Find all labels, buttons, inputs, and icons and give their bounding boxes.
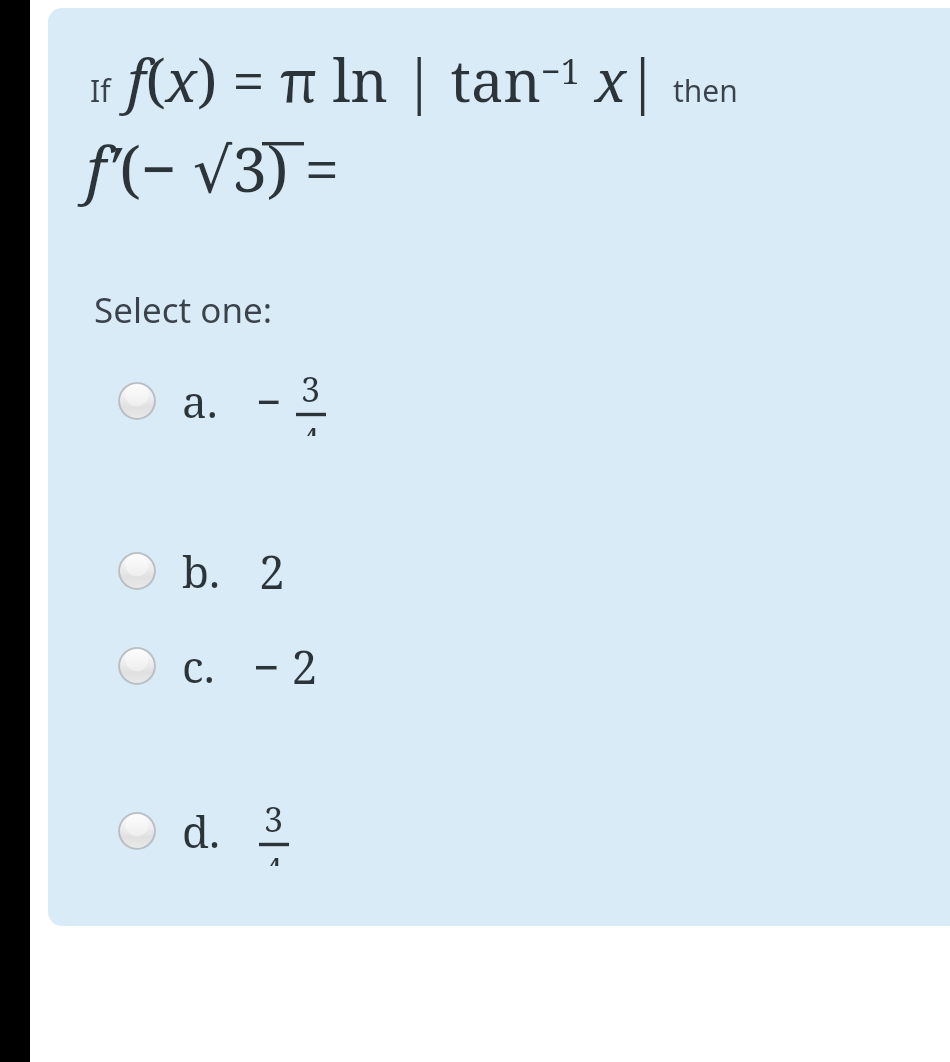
staticText: f′(− √3) = xyxy=(86,126,340,210)
staticText: d. xyxy=(182,801,221,861)
staticText: b. xyxy=(182,541,221,601)
staticText: 4 xyxy=(301,417,321,436)
button[interactable]: Select option b xyxy=(118,552,156,590)
button[interactable]: Select one: xyxy=(94,286,273,334)
button[interactable] xyxy=(48,8,950,926)
staticText: f(x) = π ln | tan−1 x| xyxy=(127,40,659,119)
staticText: 3 xyxy=(264,796,284,842)
staticText: − 2 xyxy=(253,635,318,698)
staticText: a. xyxy=(182,371,218,431)
button[interactable]: Select option c xyxy=(118,631,558,701)
button[interactable]: Select option d xyxy=(118,812,156,850)
button[interactable]: Select option d xyxy=(118,796,558,866)
staticText: If xyxy=(90,70,111,111)
button[interactable]: Select option b xyxy=(118,536,558,606)
button[interactable]: Select option a xyxy=(118,366,558,436)
staticText: 3 xyxy=(301,366,321,412)
staticText: 4 xyxy=(264,847,284,866)
staticText: then xyxy=(673,70,738,111)
staticText: 2 xyxy=(259,540,285,603)
staticText: − xyxy=(256,371,282,431)
button[interactable]: Select option c xyxy=(118,647,156,685)
button[interactable]: Select option a xyxy=(118,382,156,420)
staticText: c. xyxy=(182,636,215,696)
